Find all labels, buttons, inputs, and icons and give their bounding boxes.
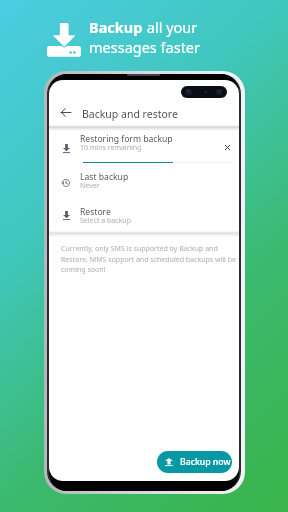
staticText: Restore [80,206,111,218]
staticText: Restoring form backup [80,133,173,145]
staticText: Last backup [80,171,129,183]
button[interactable]: Backup now [157,451,232,473]
staticText: 10 mins remaining [80,143,142,153]
staticText: messages faster [89,37,201,57]
button[interactable] [58,170,190,194]
staticText: Backup [89,17,143,37]
staticText: Select a backup [80,216,131,226]
staticText: Backup and restore [82,107,178,121]
button[interactable]: Cancel [220,140,234,154]
staticText: all your [143,17,198,37]
button[interactable] [58,204,190,228]
button[interactable] [58,131,190,157]
button[interactable]: Back [57,104,75,120]
staticText: Currently, only SMS is supported by Back… [61,244,236,274]
staticText: Backup now [180,456,231,468]
staticText: Never [80,181,100,191]
